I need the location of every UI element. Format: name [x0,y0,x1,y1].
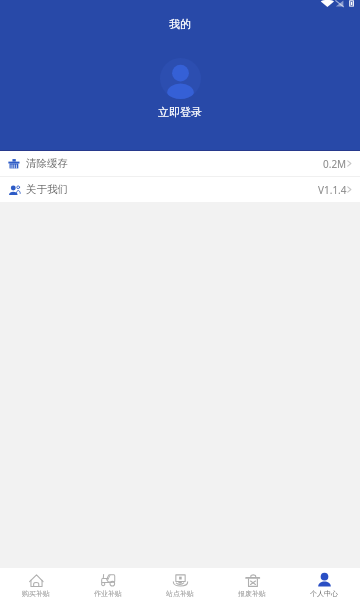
staticText: 报废补贴 [238,589,266,598]
button[interactable]: 关于我们 [0,177,360,202]
button[interactable]: 立即登录 [158,105,202,119]
button[interactable]: 作业补贴 [72,568,144,600]
button[interactable]: 购买补贴 [0,568,72,600]
staticText: V1.1.4 [318,183,347,197]
staticText: 站点补贴 [166,589,194,598]
staticText: 我的 [169,17,191,31]
button[interactable]: 个人中心 [288,568,360,600]
staticText: 0.2M [323,157,347,171]
staticText: 购买补贴 [22,589,50,598]
button[interactable]: 清除缓存 [0,151,360,176]
button[interactable]: 头像 [160,58,201,99]
staticText: 清除缓存 [26,157,68,170]
staticText: 作业补贴 [94,589,122,598]
button[interactable]: 站点补贴 [144,568,216,600]
staticText: 个人中心 [310,589,338,598]
staticText: 关于我们 [26,183,68,196]
button[interactable]: 报废补贴 [216,568,288,600]
